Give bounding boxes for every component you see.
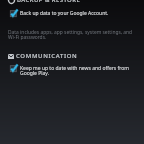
- staticText: Data includes apps, app settings, system…: [8, 29, 133, 41]
- other: Communication: [8, 54, 14, 59]
- staticText: Back up data to your Google Account.: [20, 10, 109, 17]
- button[interactable]: Back up data to your Google Account.: [0, 9, 144, 17]
- staticText: Keep me up to date with news and offers …: [20, 65, 129, 77]
- staticText: BACKUP & RESTORE: [17, 0, 81, 4]
- button[interactable]: Communication: [8, 52, 78, 60]
- staticText: COMMUNICATION: [16, 52, 78, 60]
- button[interactable]: Backup and restore: [8, 0, 81, 4]
- other: Backup and restore: [8, 0, 15, 4]
- button[interactable]: Keep me up to date with news and offers …: [0, 64, 144, 76]
